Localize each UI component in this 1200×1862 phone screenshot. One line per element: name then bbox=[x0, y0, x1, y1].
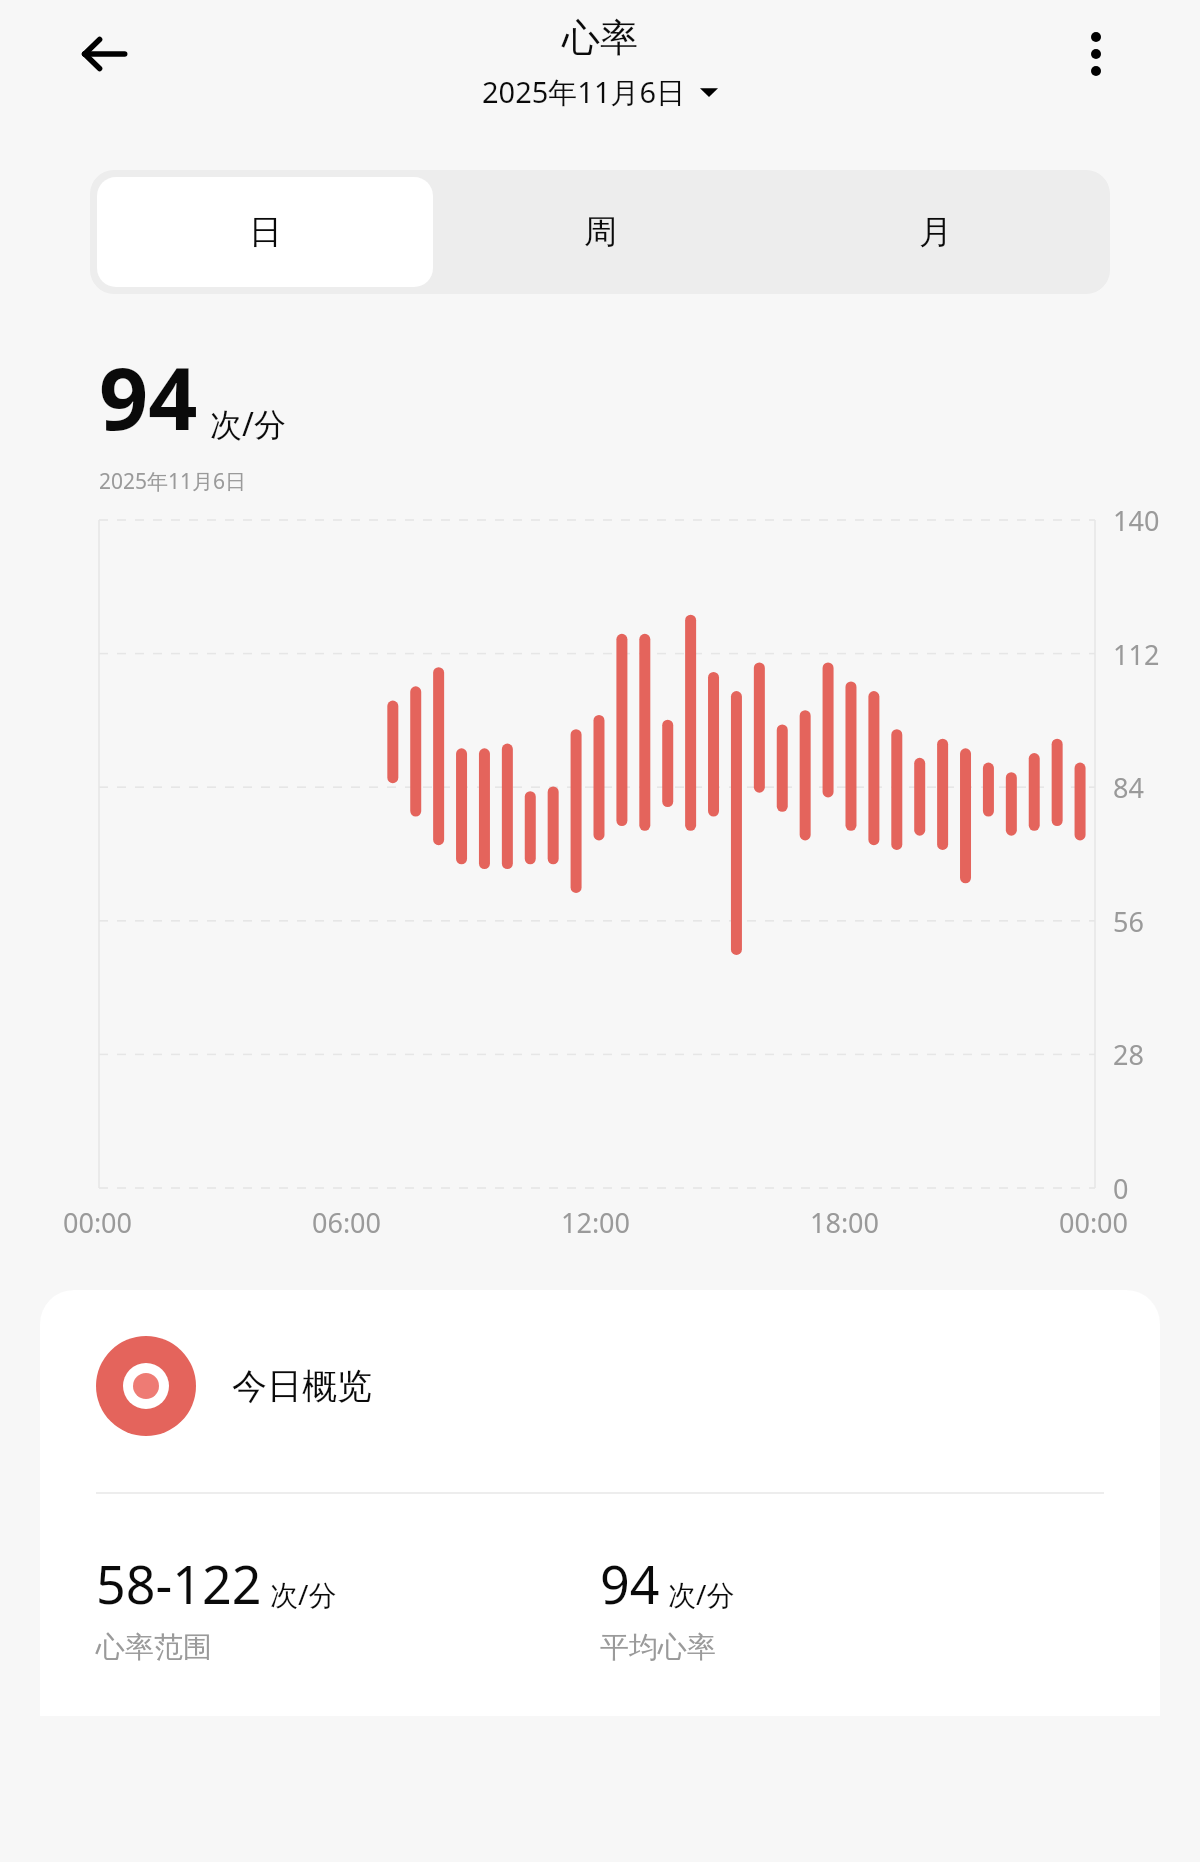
staticText: 次/分 bbox=[668, 1575, 735, 1613]
staticText: 00:00 bbox=[63, 1204, 133, 1241]
button[interactable]: 日 bbox=[97, 177, 433, 287]
staticText: 心率 bbox=[562, 14, 638, 62]
staticText: 94 bbox=[600, 1548, 660, 1619]
staticText: 94 bbox=[99, 338, 198, 455]
staticText: 84 bbox=[1113, 769, 1144, 806]
staticText: 月 bbox=[919, 211, 952, 253]
button[interactable]: 周 bbox=[433, 177, 768, 287]
staticText: 周 bbox=[584, 211, 617, 253]
staticText: 12:00 bbox=[561, 1204, 631, 1241]
staticText: 58-122 bbox=[96, 1548, 262, 1619]
staticText: 06:00 bbox=[312, 1204, 382, 1241]
button[interactable]: 今日概览 bbox=[40, 1290, 1160, 1716]
staticText: 今日概览 bbox=[232, 1364, 372, 1408]
button[interactable]: 2025年11月6日 bbox=[478, 70, 722, 114]
staticText: 56 bbox=[1113, 903, 1144, 940]
staticText: 心率范围 bbox=[96, 1629, 212, 1666]
staticText: 28 bbox=[1113, 1036, 1144, 1073]
staticText: 0 bbox=[1113, 1170, 1129, 1207]
staticText: 次/分 bbox=[270, 1575, 337, 1613]
staticText: 18:00 bbox=[810, 1204, 880, 1241]
button[interactable]: More options bbox=[1060, 18, 1132, 90]
button[interactable]: 月 bbox=[768, 177, 1103, 287]
staticText: 140 bbox=[1113, 502, 1160, 539]
button[interactable]: Back bbox=[68, 18, 140, 90]
staticText: 00:00 bbox=[1059, 1204, 1129, 1241]
staticText: 2025年11月6日 bbox=[482, 72, 686, 112]
staticText: 112 bbox=[1113, 636, 1160, 673]
staticText: 2025年11月6日 bbox=[99, 467, 247, 496]
staticText: 日 bbox=[249, 211, 282, 253]
staticText: 平均心率 bbox=[600, 1629, 716, 1666]
staticText: 次/分 bbox=[210, 402, 286, 446]
